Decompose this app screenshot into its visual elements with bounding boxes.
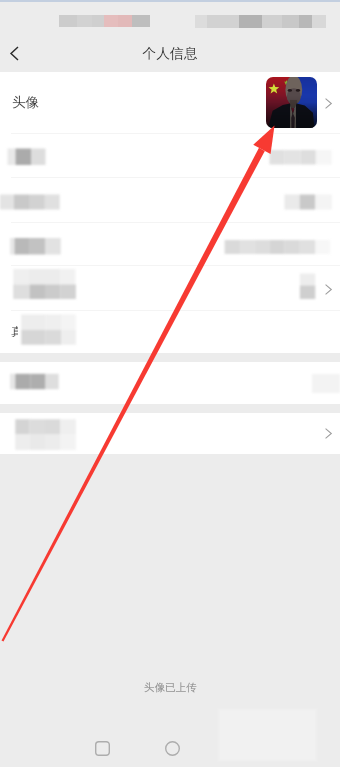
button[interactable]: Recent apps — [86, 732, 118, 764]
button[interactable]: Back — [0, 36, 30, 72]
button[interactable]: Home — [156, 732, 188, 764]
button[interactable]: Open — [325, 98, 332, 109]
button[interactable] — [0, 265, 340, 310]
button[interactable] — [0, 222, 340, 265]
staticText: 个人信息 — [142, 45, 198, 62]
staticText: 头像 — [12, 94, 40, 111]
button[interactable]: Open — [325, 428, 332, 439]
button[interactable] — [0, 362, 340, 404]
button[interactable]: Open — [325, 284, 332, 295]
button[interactable] — [0, 72, 340, 133]
button[interactable]: Profile picture — [266, 77, 317, 128]
button[interactable] — [0, 310, 340, 353]
staticText: 真 — [11, 325, 18, 337]
staticText: 头像已上传 — [144, 681, 197, 694]
button[interactable] — [0, 177, 340, 222]
button[interactable] — [0, 413, 340, 453]
button[interactable] — [0, 133, 340, 177]
